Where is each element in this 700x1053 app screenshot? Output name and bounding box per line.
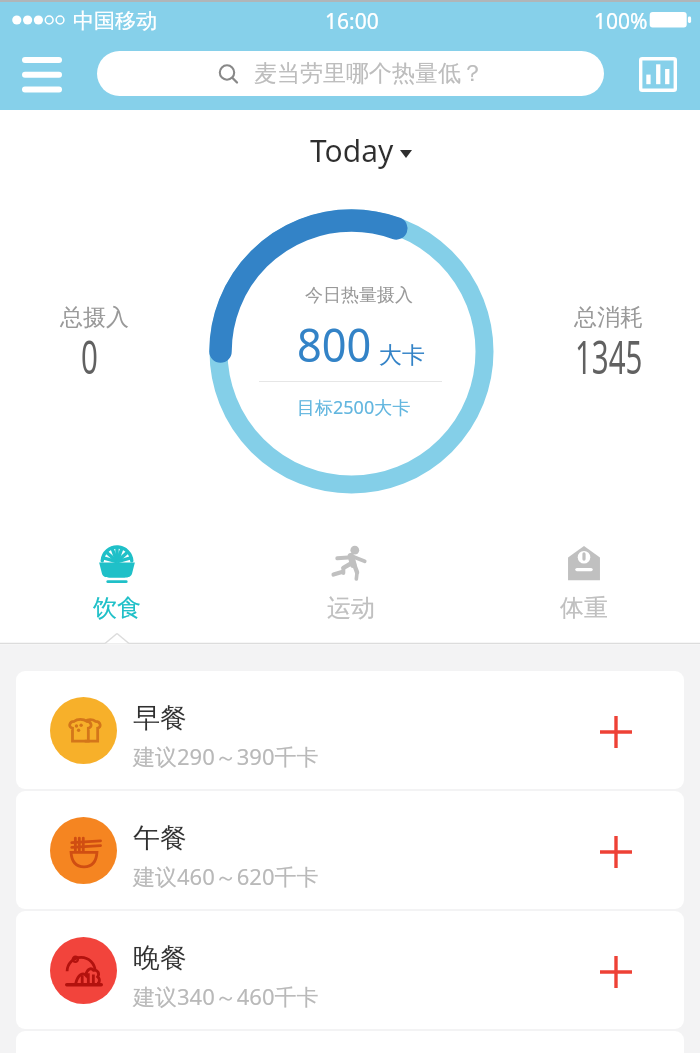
staticText: 大卡	[379, 341, 425, 370]
button[interactable]: 麦当劳里哪个热量低？	[97, 51, 604, 96]
button[interactable]: 运动	[234, 545, 467, 623]
staticText: 今日热量摄入	[305, 284, 413, 307]
staticText: 总消耗	[574, 303, 643, 332]
button[interactable]: Add 晚餐	[592, 948, 640, 996]
staticText: 早餐	[133, 701, 187, 735]
staticText: Today	[310, 130, 394, 171]
staticText: 800	[297, 313, 371, 376]
staticText: 目标2500大卡	[297, 395, 411, 420]
button[interactable]: 体重	[467, 545, 700, 623]
button[interactable]: 饮食	[0, 545, 234, 623]
button[interactable]: 早餐	[16, 671, 684, 789]
staticText: 午餐	[133, 821, 187, 855]
staticText: 0	[81, 326, 98, 387]
staticText: 饮食	[93, 593, 141, 623]
staticText: 16:00	[325, 7, 379, 36]
button[interactable]: Statistics	[628, 44, 688, 104]
button[interactable]: 午餐	[16, 791, 684, 909]
button[interactable]: 晚餐	[16, 911, 684, 1029]
button[interactable]: Today	[304, 128, 418, 173]
button[interactable]: Add 午餐	[592, 828, 640, 876]
staticText: 总摄入	[60, 303, 129, 332]
staticText: 运动	[327, 593, 375, 623]
staticText: 建议460～620千卡	[133, 861, 319, 891]
staticText: 建议340～460千卡	[133, 981, 319, 1011]
button[interactable]: Add 早餐	[592, 708, 640, 756]
staticText: 晚餐	[133, 941, 187, 975]
staticText: 麦当劳里哪个热量低？	[254, 59, 484, 88]
staticText: 100%	[594, 7, 648, 36]
staticText: 建议290～390千卡	[133, 741, 319, 771]
staticText: 1345	[575, 326, 642, 387]
button[interactable]: Menu	[12, 45, 72, 105]
staticText: 体重	[560, 593, 608, 623]
staticText: 中国移动	[73, 8, 157, 34]
